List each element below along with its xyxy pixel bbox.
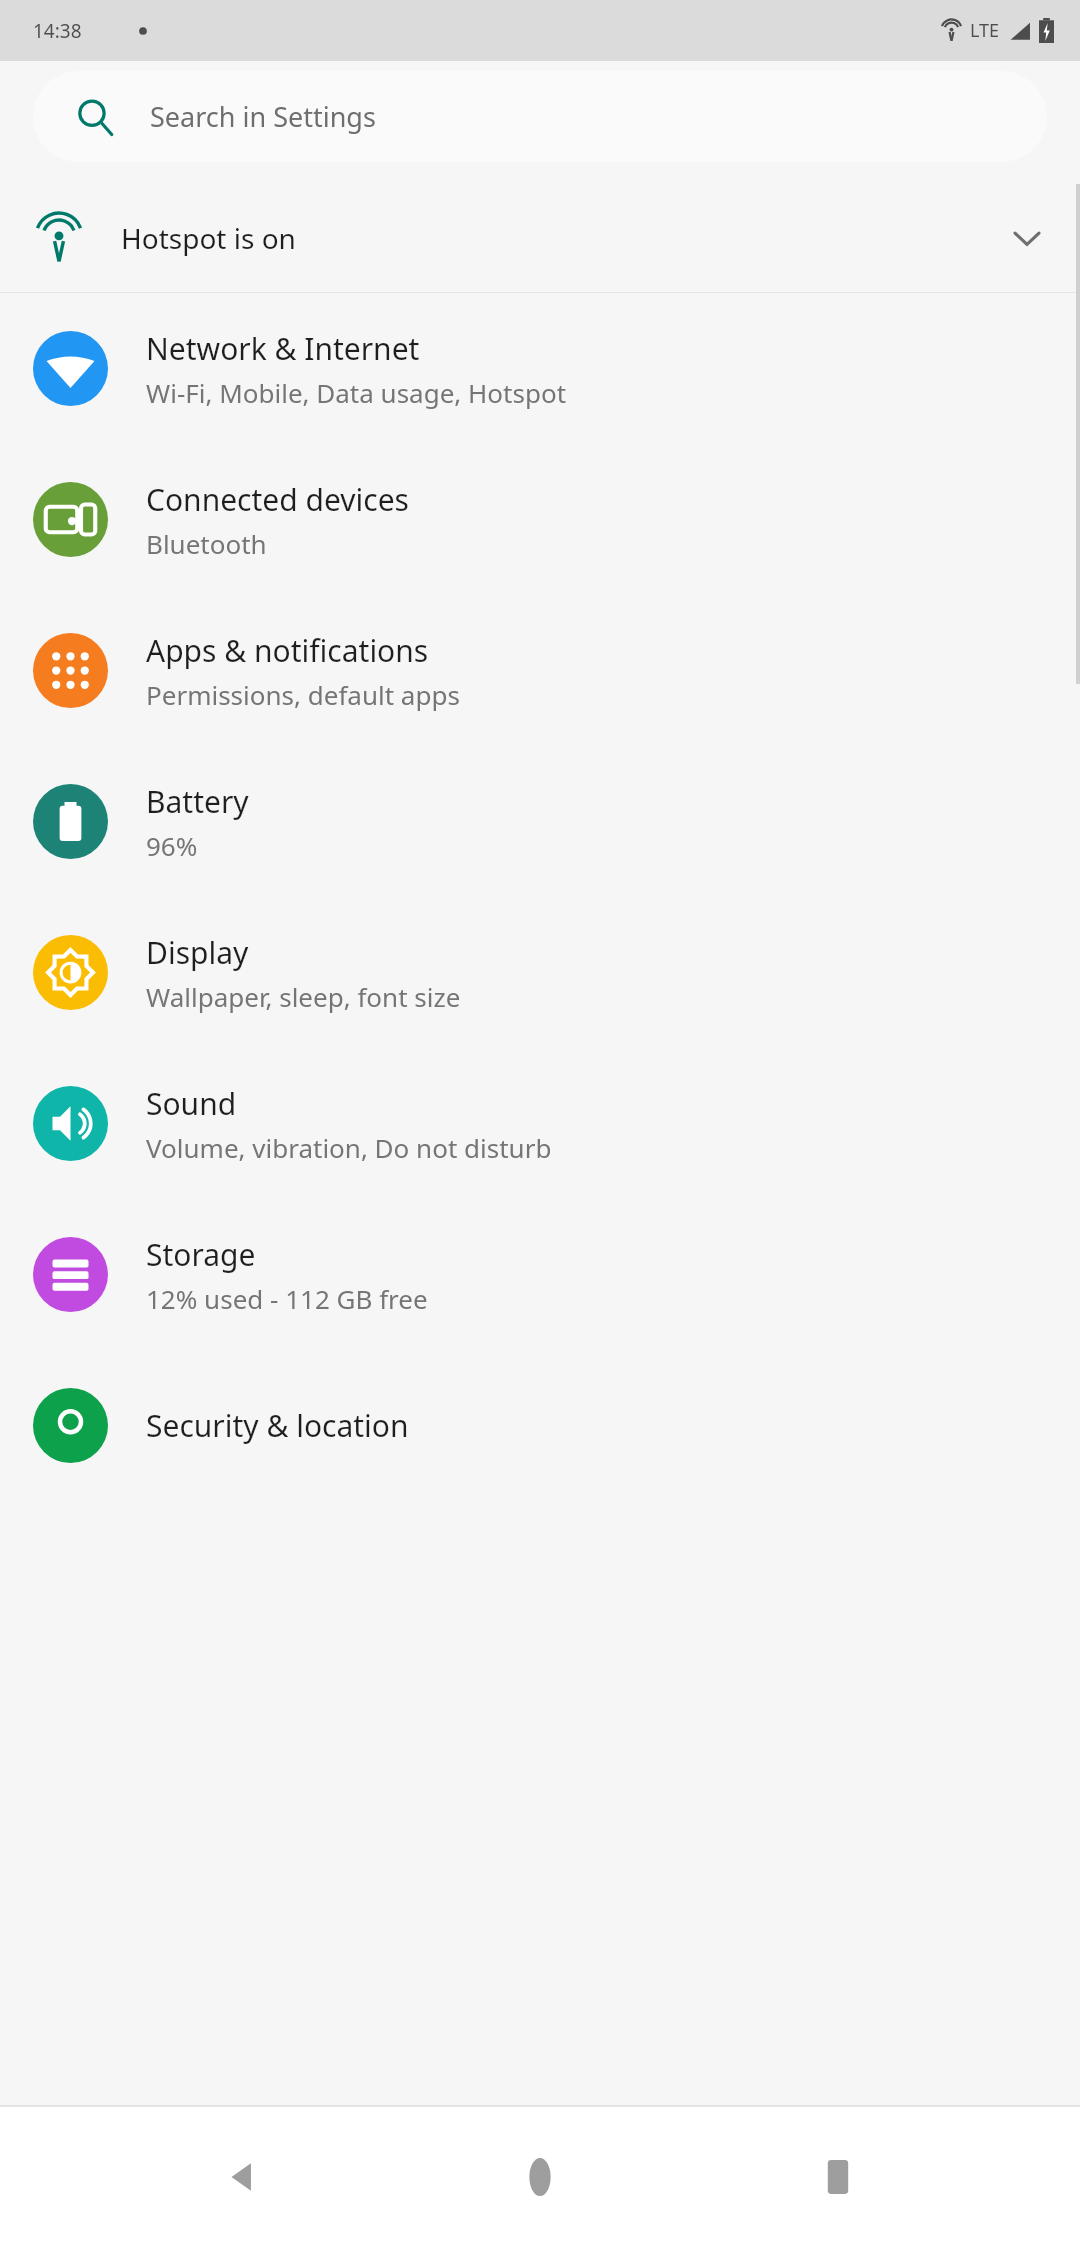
staticText: Bluetooth [146, 526, 267, 561]
staticText: Connected devices [146, 479, 409, 520]
staticText: Display [146, 932, 249, 973]
staticText: Permissions, default apps [146, 677, 460, 712]
staticText: Search in Settings [150, 98, 376, 135]
staticText: Sound [146, 1083, 237, 1124]
staticText: Hotspot is on [121, 219, 296, 257]
button[interactable]: Home [485, 2122, 595, 2232]
button[interactable]: Back [188, 2122, 298, 2232]
staticText: Wi-Fi, Mobile, Data usage, Hotspot [146, 375, 567, 410]
button[interactable]: Security & location [0, 1350, 1080, 1501]
staticText: Storage [146, 1234, 256, 1275]
button[interactable]: Search in Settings [33, 71, 1047, 162]
button[interactable]: Connected devices [0, 444, 1080, 595]
button[interactable]: Battery [0, 746, 1080, 897]
button[interactable]: Storage [0, 1199, 1080, 1350]
staticText: Apps & notifications [146, 630, 429, 671]
staticText: 12% used - 112 GB free [146, 1281, 428, 1316]
button[interactable]: Network & Internet [0, 293, 1080, 444]
staticText: Network & Internet [146, 328, 420, 369]
button[interactable]: Recent apps [783, 2122, 893, 2232]
button[interactable]: Sound [0, 1048, 1080, 1199]
staticText: Battery [146, 781, 249, 822]
staticText: Security & location [146, 1405, 409, 1446]
button[interactable]: Hotspot is on [0, 184, 1080, 292]
staticText: LTE [970, 18, 1000, 43]
staticText: 14:38 [33, 18, 82, 44]
staticText: 96% [146, 828, 198, 863]
staticText: Wallpaper, sleep, font size [146, 979, 461, 1014]
button[interactable]: Display [0, 897, 1080, 1048]
button[interactable]: Apps & notifications [0, 595, 1080, 746]
staticText: Volume, vibration, Do not disturb [146, 1130, 552, 1165]
